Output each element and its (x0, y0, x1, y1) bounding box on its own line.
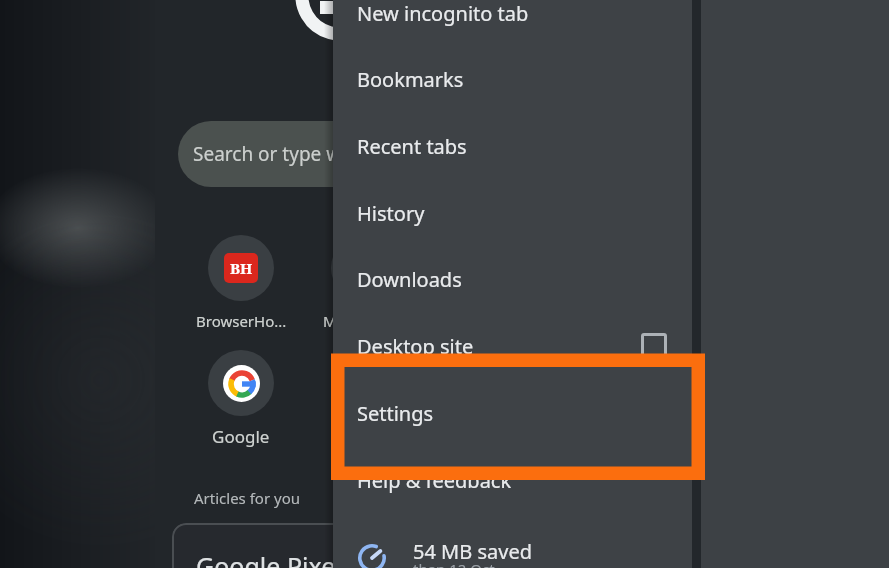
button[interactable]: 54 MB saved (333, 513, 692, 568)
button[interactable]: Downloads (333, 246, 692, 313)
staticText: History (357, 200, 425, 227)
button[interactable]: Recent tabs (333, 113, 692, 180)
staticText: Recent tabs (357, 133, 467, 160)
staticText: Desktop site (357, 333, 474, 360)
staticText: Search or type web address (193, 141, 439, 167)
button[interactable]: History (333, 180, 692, 247)
button[interactable]: Help & feedback (333, 447, 692, 514)
staticText: than 12 Oct (413, 559, 495, 568)
button[interactable]: Desktop site (333, 313, 692, 380)
button[interactable]: New incognito tab (333, 0, 692, 47)
staticText: Articles for you (194, 488, 301, 508)
staticText: Downloads (357, 266, 462, 293)
staticText: BH (230, 258, 253, 278)
staticText: MyBroad... (323, 311, 399, 331)
button[interactable] (331, 235, 397, 301)
button[interactable]: BH (208, 235, 274, 301)
button[interactable]: Google Pixel 4 (172, 523, 632, 568)
staticText: Help & feedback (357, 467, 512, 494)
staticText: Google Pixel 4 (196, 549, 363, 568)
staticText: Bookmarks (357, 66, 464, 93)
staticText: Settings (357, 400, 434, 427)
staticText: New incognito tab (357, 0, 529, 27)
button[interactable]: Settings (333, 380, 692, 447)
button[interactable]: Bookmarks (333, 46, 692, 113)
staticText: Google (212, 425, 270, 448)
staticText: BrowserHo... (196, 311, 287, 331)
button[interactable]: Search or type web address (178, 121, 578, 187)
staticText: 54 MB saved (413, 538, 532, 565)
button[interactable] (208, 350, 274, 416)
